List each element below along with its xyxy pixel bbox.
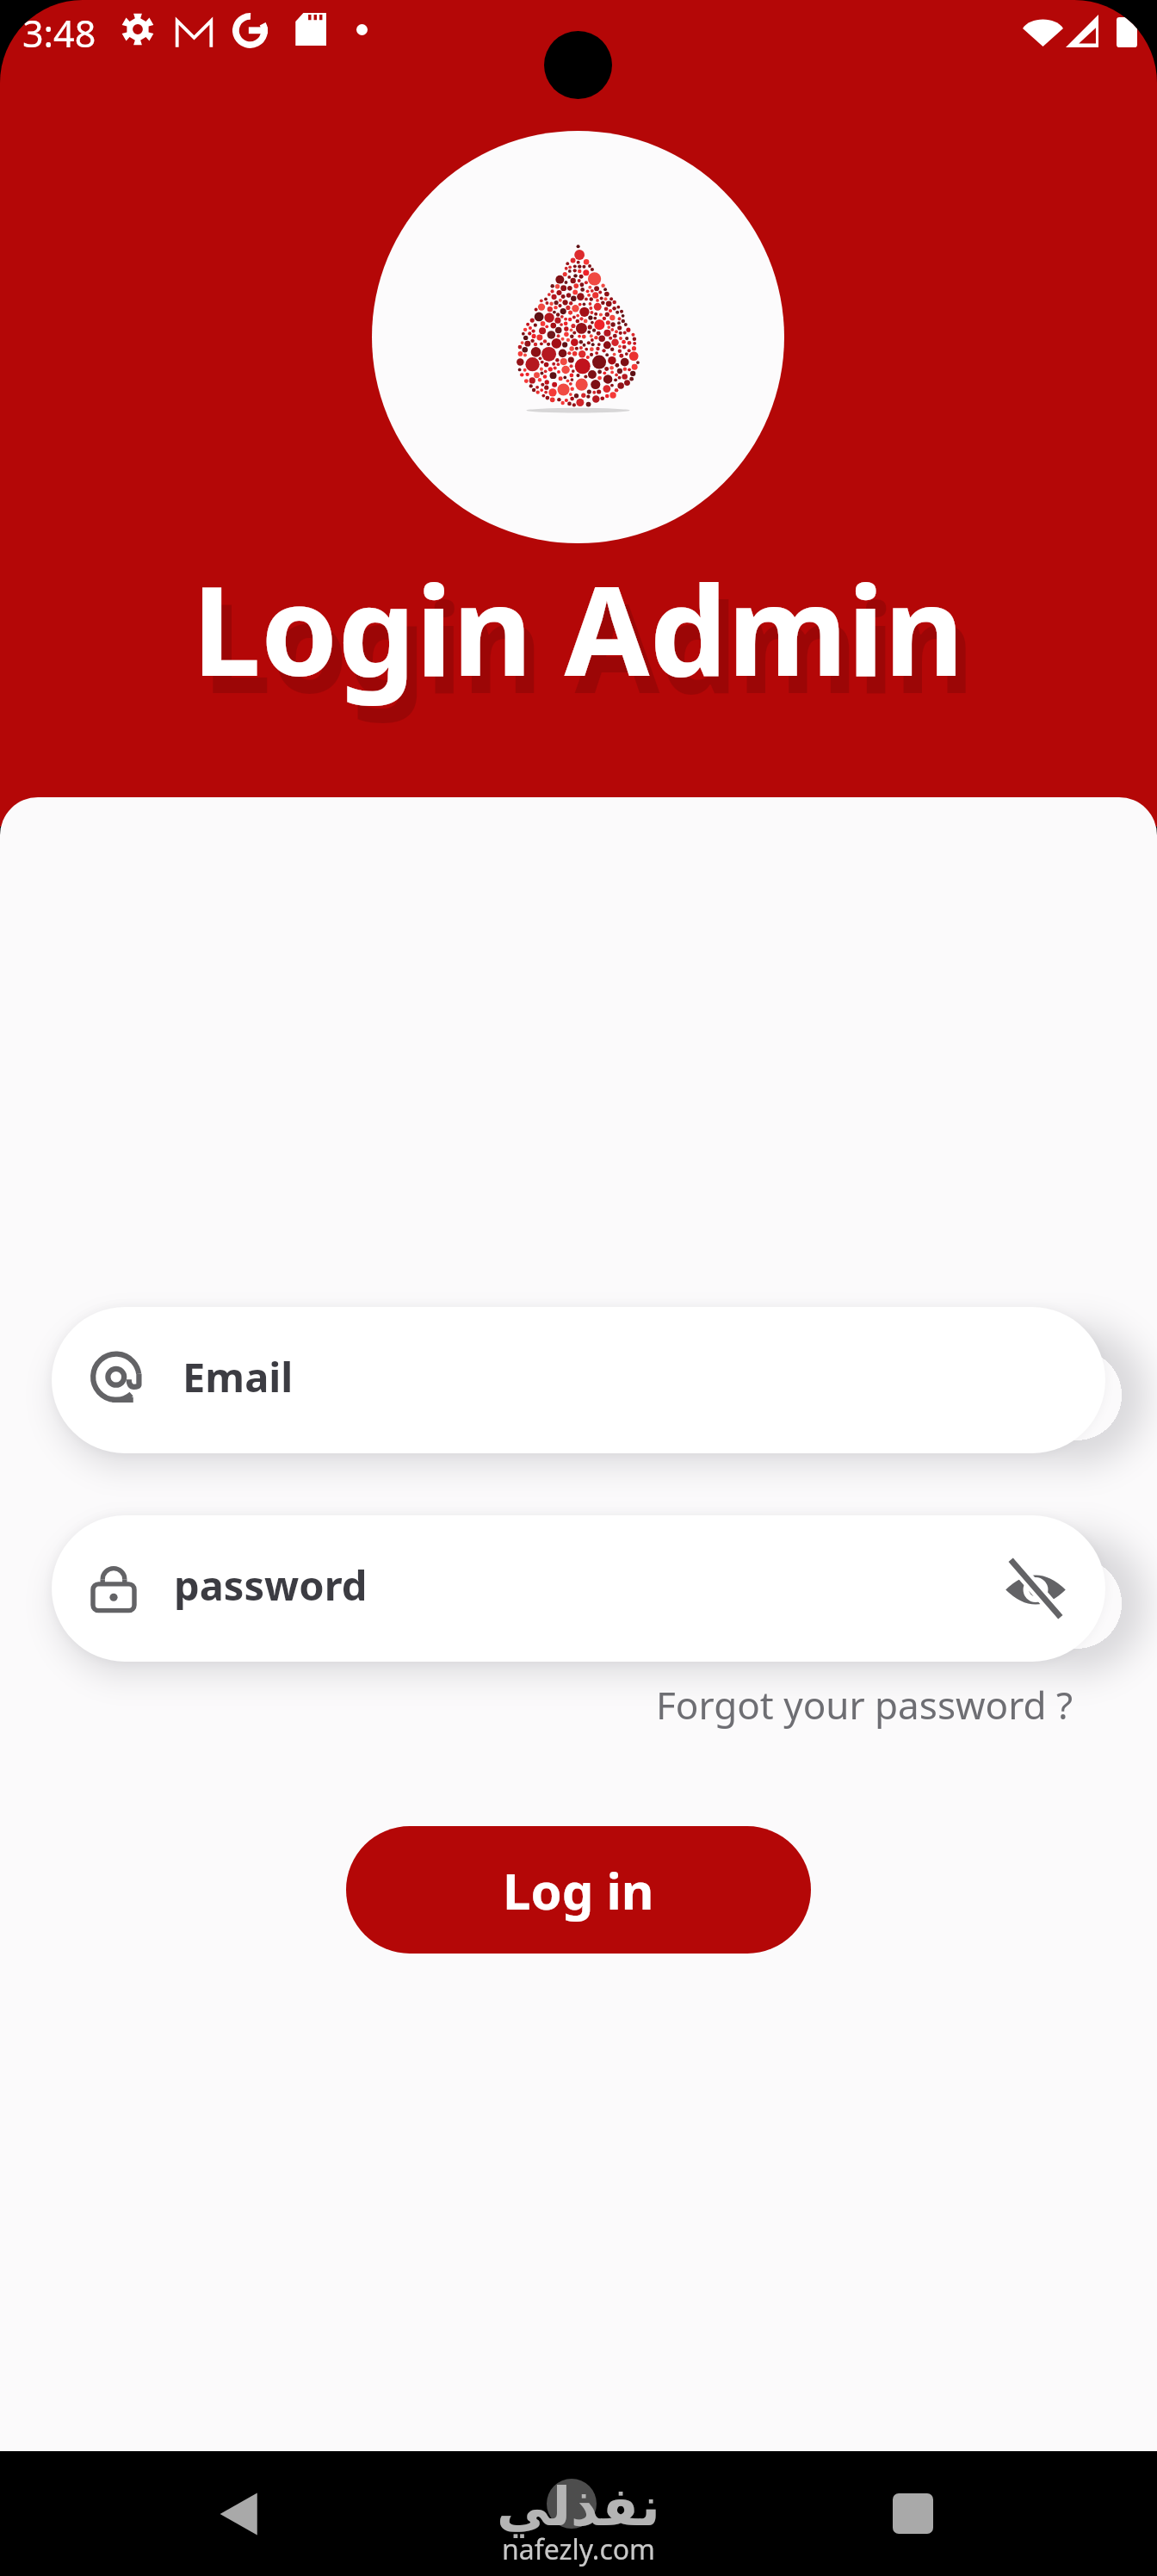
staticText: password [174, 1557, 368, 1613]
button[interactable]: Recent apps [848, 2451, 977, 2576]
button[interactable]: Log in [346, 1826, 811, 1954]
button[interactable]: password [52, 1515, 1105, 1662]
staticText: نفذلي [497, 2475, 660, 2537]
button[interactable]: Email [52, 1307, 1105, 1453]
staticText: Email [183, 1349, 294, 1404]
staticText: 3:48 [22, 8, 96, 59]
staticText: Login Admin [192, 544, 965, 712]
staticText: Log in [503, 1856, 654, 1924]
button[interactable]: Show password [1004, 1557, 1067, 1620]
button[interactable]: Forgot your password ? [651, 1674, 1079, 1736]
staticText: Login Admin [202, 561, 975, 729]
button[interactable]: Back [176, 2451, 305, 2576]
staticText: Forgot your password ? [656, 1679, 1073, 1731]
staticText: nafezly.com [502, 2530, 656, 2568]
